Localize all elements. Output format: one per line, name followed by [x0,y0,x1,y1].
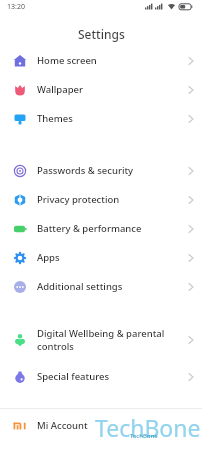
staticText: Battery & performance [37,222,142,235]
staticText: TechBone [95,412,201,443]
staticText: Home screen [37,54,97,67]
staticText: Apps [37,251,60,264]
button[interactable]: Home screen [0,46,202,75]
staticText: Themes [37,112,73,125]
staticText: Passwords & security [37,164,134,177]
staticText: Special features [37,370,110,383]
staticText: TechBone [130,432,158,440]
button[interactable]: Themes [0,104,202,133]
button[interactable]: Passwords & security [0,156,202,185]
button[interactable]: Wallpaper [0,75,202,104]
button[interactable]: Digital Wellbeing & parental controls [0,323,202,356]
button[interactable]: Apps [0,243,202,272]
staticText: Settings [78,26,125,42]
button[interactable]: Battery & performance [0,214,202,243]
staticText: Mi Account [37,419,88,432]
staticText: Additional settings [37,280,123,293]
button[interactable]: Privacy protection [0,185,202,214]
staticText: 13:20 [7,2,25,12]
staticText: Privacy protection [37,193,120,206]
staticText: Wallpaper [37,83,83,96]
button[interactable]: Additional settings [0,272,202,301]
button[interactable]: Mi Account [0,411,202,440]
button[interactable]: Special features [0,362,202,391]
staticText: Digital Wellbeing & parental controls [37,327,165,353]
